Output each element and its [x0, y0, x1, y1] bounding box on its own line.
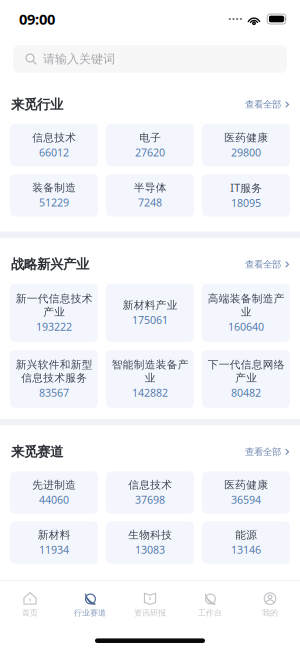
staticText: 请输入关键词	[43, 52, 115, 66]
staticText: 先进制造	[32, 478, 76, 491]
staticText: 来觅行业	[11, 96, 63, 113]
staticText: 83567	[39, 385, 69, 400]
button[interactable]: 信息技术	[106, 471, 194, 514]
staticText: 18095	[231, 196, 261, 210]
button[interactable]: 先进制造	[10, 471, 98, 514]
staticText: 36594	[231, 492, 261, 507]
staticText: 医药健康	[224, 478, 268, 491]
staticText: 能源	[235, 528, 257, 541]
button[interactable]: 新兴软件和新型信息技术服务	[10, 350, 98, 408]
staticText: 高端装备制造产业	[207, 292, 284, 318]
staticText: 175061	[132, 313, 168, 327]
staticText: 战略新兴产业	[11, 256, 89, 273]
button[interactable]: 查看全部	[245, 259, 289, 270]
button[interactable]: 半导体	[106, 174, 194, 216]
button[interactable]: 智能制造装备产业	[106, 350, 194, 408]
button[interactable]: 高端装备制造产业	[202, 284, 290, 342]
staticText: IT服务	[230, 181, 262, 195]
staticText: 51229	[39, 195, 69, 209]
button[interactable]: IT服务	[202, 174, 290, 216]
staticText: 来觅赛道	[11, 444, 63, 460]
button[interactable]: 新材料产业	[106, 284, 194, 342]
staticText: 信息技术	[32, 131, 76, 144]
staticText: 信息技术	[128, 478, 172, 491]
staticText: 工作台	[198, 608, 222, 618]
button[interactable]: 新一代信息技术产业	[10, 284, 98, 342]
button[interactable]: 工作台	[180, 588, 240, 622]
staticText: 新一代信息技术产业	[15, 292, 92, 318]
staticText: 医药健康	[224, 131, 268, 144]
staticText: 7248	[138, 195, 162, 209]
staticText: 查看全部	[245, 99, 281, 110]
button[interactable]: 信息技术	[10, 124, 98, 166]
button[interactable]: 查看全部	[245, 99, 289, 110]
button[interactable]: 新材料	[10, 521, 98, 564]
button[interactable]: 医药健康	[202, 124, 290, 166]
staticText: 37698	[135, 492, 165, 507]
staticText: 142882	[132, 385, 168, 400]
staticText: 首页	[22, 608, 38, 618]
staticText: 09:00	[19, 9, 55, 29]
button[interactable]: 我的	[240, 588, 300, 622]
button[interactable]: 医药健康	[202, 471, 290, 514]
staticText: 27620	[135, 145, 165, 159]
staticText: 半导体	[133, 181, 166, 194]
staticText: 新材料	[37, 528, 70, 541]
staticText: 下一代信息网络产业	[207, 358, 284, 384]
staticText: 我的	[262, 608, 278, 618]
staticText: 查看全部	[245, 259, 281, 270]
staticText: 新材料产业	[122, 299, 177, 312]
staticText: 智能制造装备产业	[111, 358, 188, 384]
staticText: 13146	[231, 542, 261, 557]
staticText: 新兴软件和新型信息技术服务	[15, 358, 92, 384]
staticText: 160640	[228, 319, 264, 334]
staticText: 查看全部	[245, 446, 281, 458]
staticText: 生物科技	[128, 528, 172, 541]
staticText: 电子	[139, 131, 161, 144]
staticText: 80482	[231, 385, 261, 400]
button[interactable]: 生物科技	[106, 521, 194, 564]
staticText: 装备制造	[32, 181, 76, 194]
button[interactable]: 首页	[0, 588, 60, 622]
staticText: 29800	[231, 145, 261, 159]
staticText: 193222	[36, 319, 72, 334]
button[interactable]: 请输入关键词	[13, 45, 287, 73]
staticText: 13083	[135, 542, 165, 557]
button[interactable]: 电子	[106, 124, 194, 166]
button[interactable]: 下一代信息网络产业	[202, 350, 290, 408]
button[interactable]: 查看全部	[245, 446, 289, 458]
button[interactable]: 资讯研报	[120, 588, 180, 622]
staticText: 资讯研报	[134, 608, 166, 618]
staticText: 66012	[39, 145, 69, 159]
staticText: 11934	[39, 542, 69, 557]
staticText: 44060	[39, 492, 69, 507]
button[interactable]: 能源	[202, 521, 290, 564]
button[interactable]: 装备制造	[10, 174, 98, 216]
button[interactable]: 行业赛道	[60, 588, 120, 622]
staticText: 行业赛道	[74, 608, 106, 618]
